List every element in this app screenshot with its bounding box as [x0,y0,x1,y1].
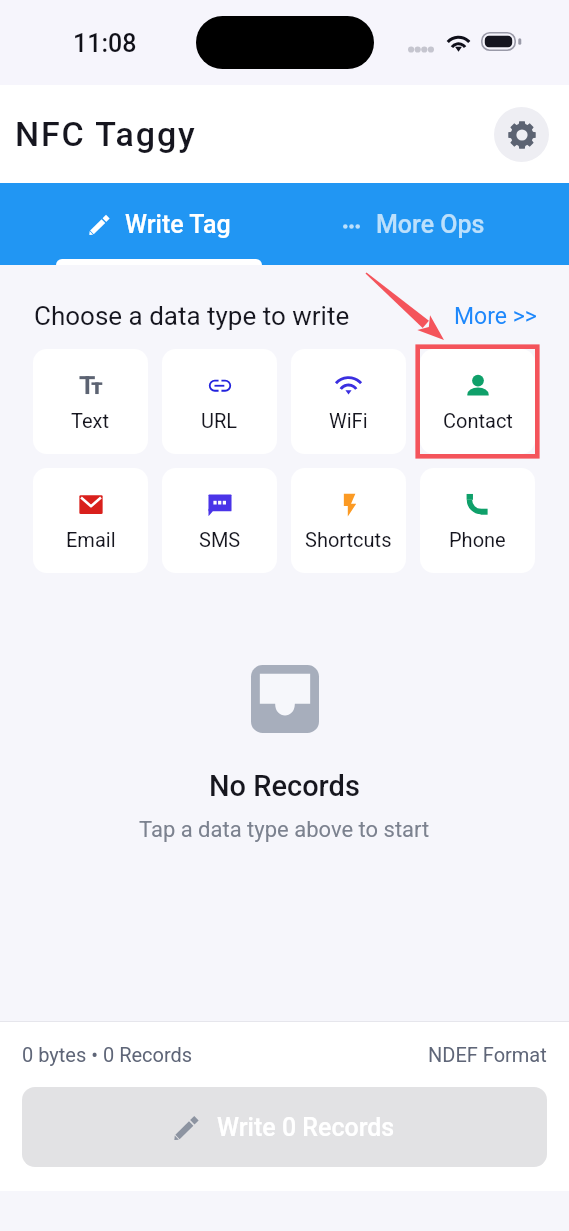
staticText: Shortcuts [305,528,392,551]
staticText: More >> [454,303,537,330]
staticText: SMS [199,528,241,551]
button[interactable]: Contact [420,349,535,454]
staticText: No Records [209,769,360,803]
button[interactable]: Email [33,468,148,573]
button[interactable]: URL [162,349,277,454]
staticText: WiFi [329,409,368,432]
button[interactable]: Write Tag [0,183,284,265]
staticText: 11:08 [73,29,137,58]
button[interactable]: WiFi [291,349,406,454]
staticText: Text [71,409,110,432]
staticText: More Ops [376,210,485,239]
button[interactable]: Text [33,349,148,454]
staticText: NDEF Format [428,1043,547,1066]
staticText: 0 bytes • 0 Records [22,1043,193,1066]
staticText: NFC Taggy [15,114,197,154]
button[interactable]: Phone [420,468,535,573]
staticText: Write 0 Records [217,1113,395,1142]
staticText: Contact [443,409,513,432]
staticText: Phone [449,528,506,551]
button[interactable]: Write 0 Records [22,1087,547,1167]
button[interactable]: Shortcuts [291,468,406,573]
staticText: Write Tag [125,210,231,239]
button[interactable]: SMS [162,468,277,573]
button[interactable]: More >> [454,303,537,330]
staticText: Choose a data type to write [34,301,350,331]
button[interactable]: More Ops [284,183,569,265]
staticText: Email [66,528,116,551]
button[interactable]: Settings [494,107,549,162]
staticText: URL [201,409,238,432]
staticText: Tap a data type above to start [139,817,430,843]
